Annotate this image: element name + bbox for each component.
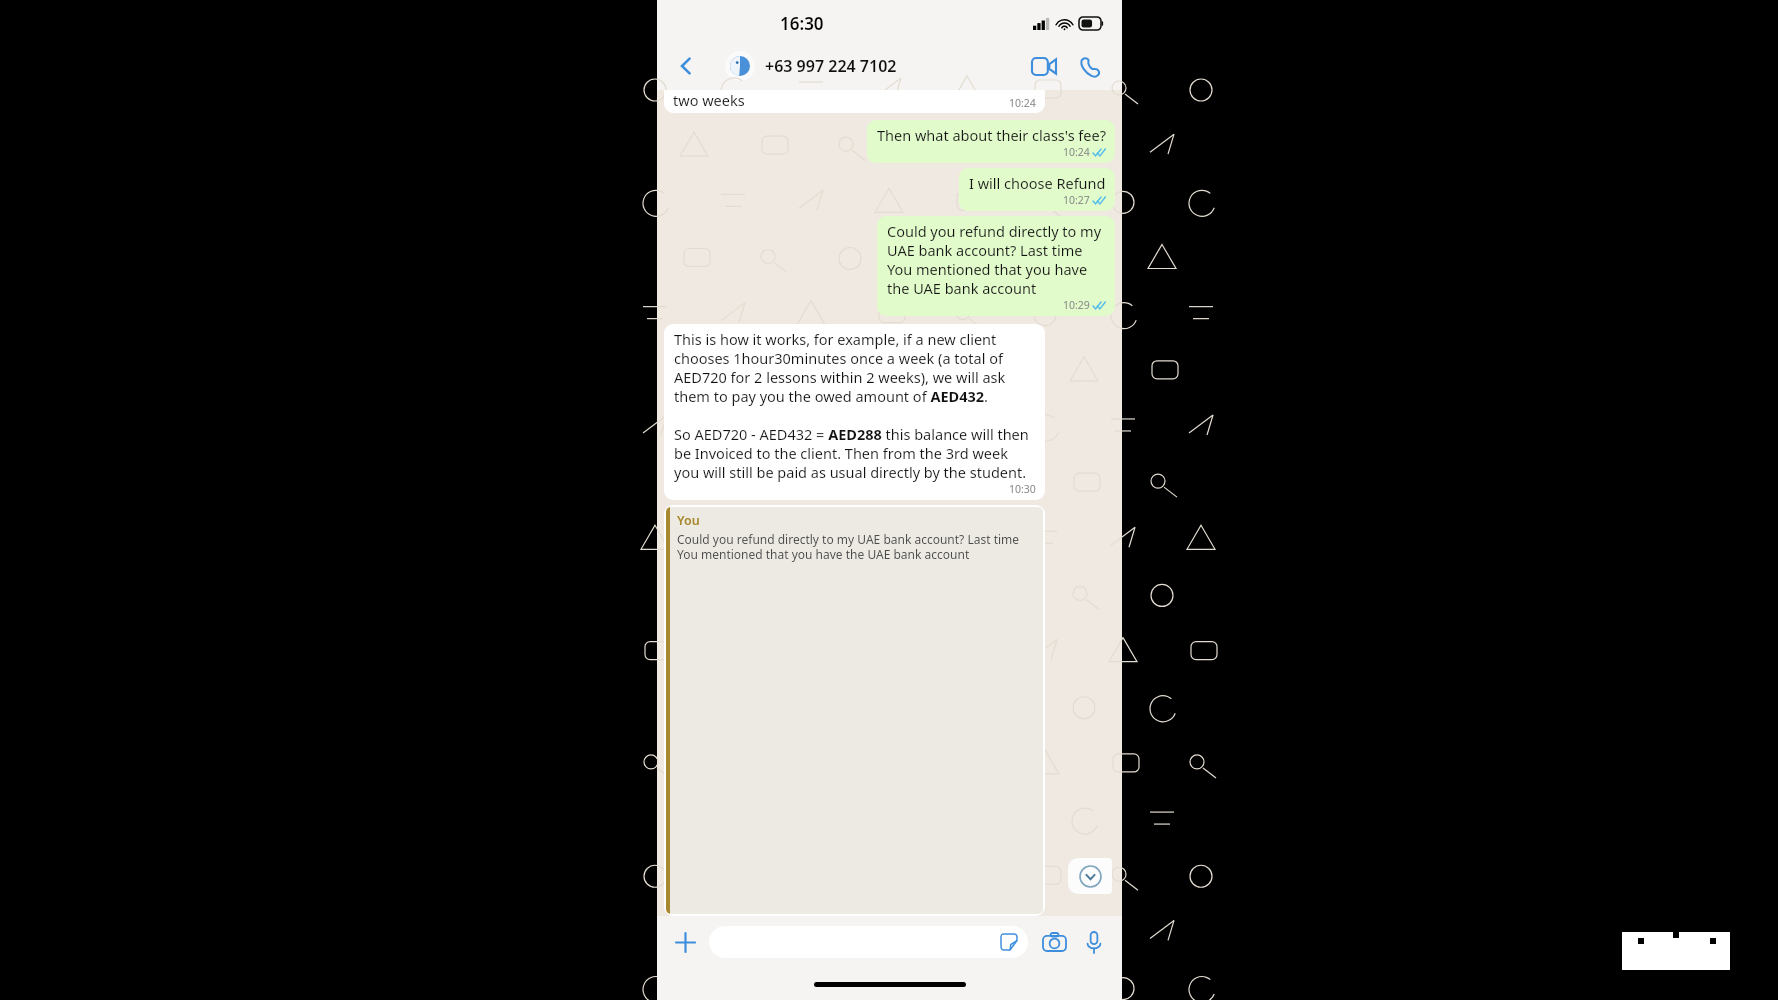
button[interactable]: Attach — [669, 926, 701, 958]
button[interactable]: Camera — [1038, 926, 1070, 958]
staticText: 10:30 — [1009, 482, 1036, 496]
button[interactable]: Voice message — [1078, 926, 1110, 958]
staticText: 10:27 — [1063, 193, 1090, 207]
staticText: +63 997 224 7102 — [765, 55, 897, 77]
staticText: 10:29 — [1063, 298, 1090, 312]
staticText: 16:30 — [780, 12, 824, 35]
button[interactable]: two weeks — [664, 90, 1045, 113]
button[interactable]: Could you refund directly to my UAE bank… — [877, 216, 1115, 316]
button[interactable]: Voice call — [1072, 48, 1108, 84]
button[interactable]: Video call — [1026, 48, 1062, 84]
button[interactable]: Stickers — [999, 932, 1019, 952]
button[interactable]: Back — [669, 49, 703, 83]
staticText: Could you refund directly to my UAE bank… — [887, 221, 1106, 298]
button[interactable]: +63 997 224 7102 — [725, 51, 1026, 81]
staticText: 10:24 — [1009, 96, 1036, 110]
staticText: 10:24 — [1063, 145, 1090, 159]
button[interactable]: Stickers — [709, 926, 1028, 958]
button[interactable]: You — [664, 505, 1045, 916]
staticText: Could you refund directly to my UAE bank… — [677, 531, 1036, 562]
button[interactable]: I will choose Refund — [959, 168, 1115, 211]
staticText: Then what about their class's fee? — [877, 125, 1106, 145]
staticText: This is how it works, for example, if a … — [674, 329, 1036, 482]
staticText: You — [677, 512, 700, 529]
button[interactable]: Then what about their class's fee? — [867, 120, 1115, 163]
staticText: I will choose Refund — [969, 173, 1106, 193]
staticText: two weeks — [673, 90, 745, 110]
button[interactable]: This is how it works, for example, if a … — [664, 324, 1045, 500]
button[interactable]: Scroll to bottom — [1068, 858, 1112, 894]
